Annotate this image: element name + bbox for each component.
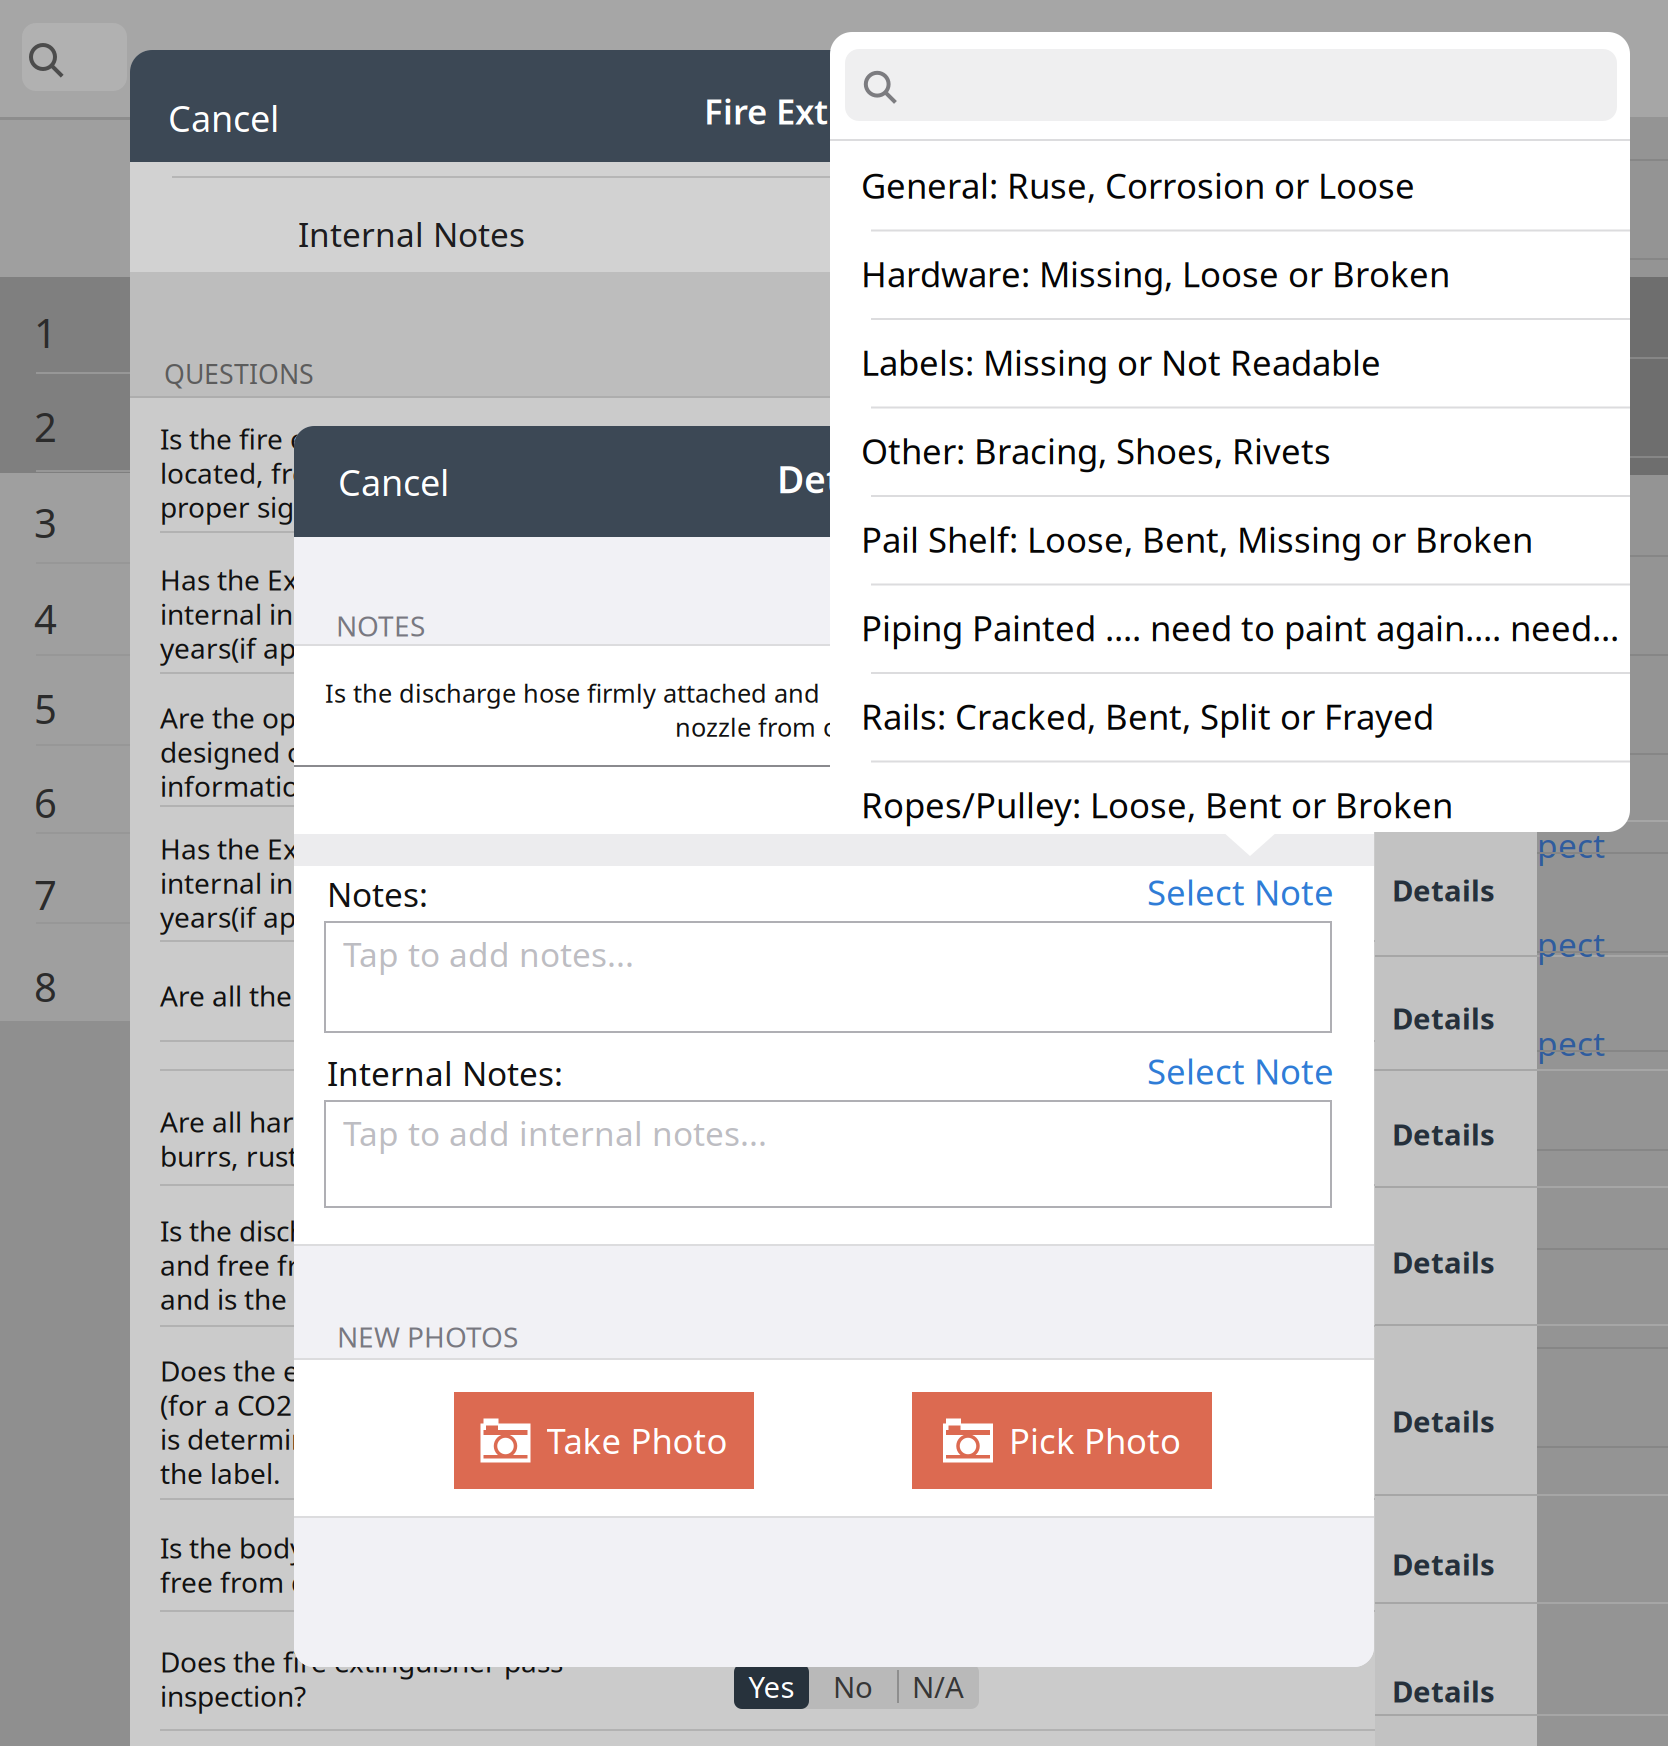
staticText: Is the discharge hose attached and free … <box>160 1212 558 1317</box>
staticText: Is the discharge hose firmly attached an… <box>325 676 820 710</box>
staticText: Det <box>777 454 841 504</box>
staticText: Has the Extinguisher had an internal ins… <box>160 830 528 935</box>
staticText: Rails: Cracked, Bent, Split or Frayed <box>861 693 1434 739</box>
staticText: Hardware: Missing, Loose or Broken <box>861 251 1450 297</box>
button[interactable]: Pick Photo <box>912 1392 1212 1489</box>
button[interactable]: Details <box>1375 1671 1552 1711</box>
button[interactable]: Cancel <box>168 88 348 148</box>
staticText: 7 <box>34 868 57 921</box>
button[interactable]: General: Ruse, Corrosion or Loose <box>830 141 1630 229</box>
button[interactable]: N/A <box>897 1664 979 1709</box>
staticText: Piping Painted .... need to paint again.… <box>861 605 1619 651</box>
staticText: Labels: Missing or Not Readable <box>861 339 1381 385</box>
staticText: pect <box>1537 823 1605 867</box>
button[interactable]: Hardware: Missing, Loose or Broken <box>830 229 1630 318</box>
staticText: No <box>833 1667 873 1706</box>
staticText: Details <box>1392 1114 1495 1153</box>
staticText: nozzle from obstructions? <box>675 710 983 744</box>
button[interactable]: Select Note <box>1134 1051 1334 1091</box>
staticText: pect <box>1537 922 1605 966</box>
staticText: Does the fire extinguisher pass inspecti… <box>160 1643 563 1714</box>
staticText: Pail Shelf: Loose, Bent, Missing or Brok… <box>861 516 1533 562</box>
staticText: General: Ruse, Corrosion or Loose <box>861 162 1415 208</box>
staticText: Internal Notes <box>298 212 525 256</box>
staticText: Details <box>1392 998 1495 1037</box>
button[interactable]: Take Photo <box>454 1392 754 1489</box>
staticText: Is the fire extinguisher properly locate… <box>160 420 578 525</box>
button[interactable]: Details <box>1375 998 1552 1038</box>
button[interactable]: Rails: Cracked, Bent, Split or Frayed <box>830 672 1630 760</box>
button[interactable]: Details <box>1375 1242 1552 1282</box>
button[interactable]: No <box>809 1664 897 1709</box>
staticText: Is the body of the extinguisher free fro… <box>160 1529 558 1600</box>
staticText: Are the operating instructions designed … <box>160 699 550 804</box>
staticText: Select Note <box>1147 869 1334 915</box>
staticText: 6 <box>34 776 57 829</box>
staticText: Yes <box>748 1667 794 1706</box>
staticText: 2 <box>34 400 57 453</box>
button[interactable]: Pail Shelf: Loose, Bent, Missing or Brok… <box>830 495 1630 583</box>
staticText: Details <box>1392 870 1495 909</box>
staticText: Details <box>1392 1544 1495 1583</box>
staticText: 3 <box>34 496 57 549</box>
button[interactable]: Piping Painted .... need to paint again.… <box>830 583 1630 672</box>
staticText: Fire Exti <box>704 88 838 134</box>
staticText: Tap to add internal notes... <box>343 1111 767 1155</box>
staticText: Select Note <box>1147 1048 1334 1094</box>
staticText: NOTES <box>336 607 425 644</box>
staticText: Details <box>1392 1242 1495 1281</box>
button[interactable]: Search <box>22 23 127 91</box>
button[interactable]: Labels: Missing or Not Readable <box>830 318 1630 406</box>
button[interactable]: Select Note <box>1134 872 1334 912</box>
button[interactable]: Ropes/Pulley: Loose, Bent or Broken <box>830 760 1630 849</box>
staticText: 5 <box>34 682 57 735</box>
staticText: QUESTIONS <box>164 356 314 391</box>
staticText: 4 <box>34 592 57 645</box>
button[interactable]: Cancel <box>338 454 518 510</box>
staticText: Cancel <box>168 94 279 142</box>
staticText: Details <box>1392 1671 1495 1710</box>
button[interactable]: Other: Bracing, Shoes, Rivets <box>830 406 1630 495</box>
button[interactable]: Details <box>1375 1114 1552 1154</box>
button[interactable]: Yes <box>734 1664 809 1709</box>
staticText: Does the extinguisher weigh (for a CO2 e… <box>160 1352 532 1492</box>
staticText: Tap to add notes... <box>343 932 634 976</box>
staticText: Pick Photo <box>1009 1417 1181 1463</box>
button[interactable]: Details <box>1375 1544 1552 1584</box>
staticText: 1 <box>34 306 57 359</box>
staticText: Are all hardware free of dents, burrs, r… <box>160 1103 557 1174</box>
staticText: Has the Extinguisher had an internal ins… <box>160 561 528 666</box>
staticText: Other: Bracing, Shoes, Rivets <box>861 428 1331 474</box>
staticText: pect <box>1537 1021 1605 1065</box>
staticText: Details <box>1392 1401 1495 1440</box>
staticText: Ropes/Pulley: Loose, Bent or Broken <box>861 782 1453 828</box>
staticText: Internal Notes: <box>327 1051 563 1095</box>
staticText: Take Photo <box>546 1417 727 1463</box>
staticText: NEW PHOTOS <box>337 1318 518 1355</box>
staticText: Notes: <box>327 872 428 916</box>
button[interactable]: Details <box>1375 870 1552 910</box>
button[interactable]: Details <box>1375 1401 1552 1441</box>
staticText: N/A <box>912 1667 964 1706</box>
staticText: Cancel <box>338 458 449 506</box>
staticText: 8 <box>34 960 57 1013</box>
staticText: Are all the parts legible? <box>160 977 473 1014</box>
